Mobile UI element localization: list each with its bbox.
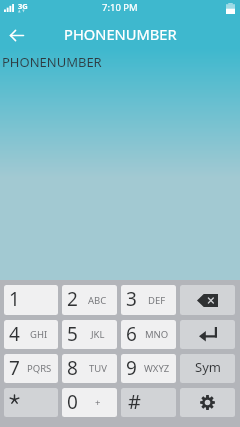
button[interactable]: Enter: [180, 320, 235, 349]
staticText: 3: [126, 286, 137, 312]
staticText: 4: [9, 321, 20, 347]
staticText: WXYZ: [144, 362, 170, 375]
staticText: GHI: [30, 328, 48, 341]
button[interactable]: Backspace: [180, 285, 235, 315]
staticText: 7:10 PM: [102, 1, 138, 14]
staticText: 7: [9, 355, 20, 381]
staticText: ABC: [88, 294, 107, 307]
button[interactable]: 8: [62, 354, 117, 383]
button[interactable]: 7: [4, 354, 58, 383]
staticText: PHONENUMBER: [64, 24, 177, 44]
button[interactable]: 5: [62, 320, 117, 349]
button[interactable]: 6: [121, 320, 176, 349]
staticText: TUV: [89, 362, 107, 375]
button[interactable]: 0: [62, 388, 117, 417]
staticText: 6: [126, 321, 137, 347]
button[interactable]: Sym: [180, 354, 235, 383]
staticText: 0: [67, 389, 78, 415]
button[interactable]: 9: [121, 354, 176, 383]
staticText: 5: [67, 321, 78, 347]
staticText: 9: [126, 355, 137, 381]
staticText: PHONENUMBER: [2, 53, 102, 71]
button[interactable]: [4, 388, 58, 417]
button[interactable]: 2: [62, 285, 117, 315]
button[interactable]: 4: [4, 320, 58, 349]
staticText: JKL: [91, 328, 105, 341]
staticText: Sym: [195, 358, 221, 376]
button[interactable]: Settings: [180, 388, 235, 417]
staticText: +: [95, 396, 101, 409]
staticText: DEF: [148, 294, 166, 307]
staticText: 2: [67, 286, 78, 312]
staticText: 3G: [18, 1, 28, 11]
staticText: #: [128, 388, 141, 415]
staticText: 1: [9, 286, 20, 312]
button[interactable]: Back: [5, 23, 29, 47]
staticText: 8: [67, 355, 78, 381]
button[interactable]: #: [121, 388, 176, 417]
button[interactable]: 3: [121, 285, 176, 315]
staticText: PQRS: [27, 362, 52, 375]
button[interactable]: 1: [4, 285, 58, 315]
staticText: MNO: [145, 328, 169, 341]
